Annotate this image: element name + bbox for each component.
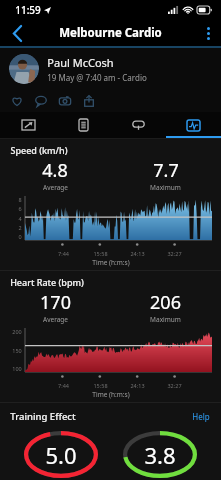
staticText: 150 <box>12 347 22 354</box>
staticText: Melbourne Cardio <box>59 25 162 41</box>
staticText: 19 May @ 7:40 am - Cardio <box>47 72 147 83</box>
staticText: 100 <box>12 365 22 372</box>
staticText: Heart Rate (bpm) <box>10 276 84 288</box>
staticText: 7:44 <box>58 250 69 257</box>
button[interactable]: Details <box>56 112 111 138</box>
button[interactable]: Like <box>9 93 25 109</box>
button[interactable]: Map <box>0 112 56 138</box>
staticText: Time (h:m:s) <box>92 390 130 399</box>
button[interactable]: Photo <box>57 93 73 109</box>
staticText: 200 <box>12 328 22 335</box>
button[interactable]: 5.0 <box>22 429 100 480</box>
staticText: Average <box>43 315 68 324</box>
staticText: Speed (km/h) <box>10 144 68 156</box>
button[interactable]: Laps <box>111 112 166 138</box>
button[interactable]: Comment <box>33 93 49 109</box>
staticText: Average <box>43 183 68 192</box>
staticText: 6 <box>18 205 22 212</box>
button[interactable]: Share <box>81 93 97 109</box>
staticText: 5.0 <box>45 440 77 470</box>
staticText: Help <box>192 411 210 422</box>
button[interactable]: More options <box>195 20 221 46</box>
button[interactable]: Help <box>190 409 212 424</box>
button[interactable] <box>9 54 39 84</box>
staticText: 32:27 <box>167 250 182 257</box>
staticText: 0 <box>18 233 22 240</box>
button[interactable]: 3.8 <box>121 429 199 480</box>
staticText: 8 <box>18 196 22 203</box>
staticText: 7.7 <box>153 158 179 183</box>
staticText: Training Effect <box>10 410 76 423</box>
staticText: 11:59 <box>15 3 41 17</box>
staticText: Maximum <box>150 183 181 192</box>
staticText: 170 <box>40 290 71 315</box>
staticText: Maximum <box>150 315 181 324</box>
staticText: Paul McCosh <box>47 55 114 70</box>
staticText: 4 <box>18 215 22 222</box>
staticText: 32:27 <box>167 382 182 389</box>
staticText: 4.8 <box>42 158 68 183</box>
staticText: 15:58 <box>93 250 108 257</box>
button[interactable]: Back <box>0 20 34 46</box>
staticText: 7:44 <box>58 382 69 389</box>
staticText: 24:13 <box>130 382 145 389</box>
button[interactable]: Charts <box>166 112 221 138</box>
staticText: 2 <box>18 224 22 231</box>
staticText: Time (h:m:s) <box>92 258 130 267</box>
staticText: 3.8 <box>144 440 176 470</box>
staticText: 206 <box>150 290 181 315</box>
staticText: 15:58 <box>93 382 108 389</box>
staticText: 24:13 <box>130 250 145 257</box>
